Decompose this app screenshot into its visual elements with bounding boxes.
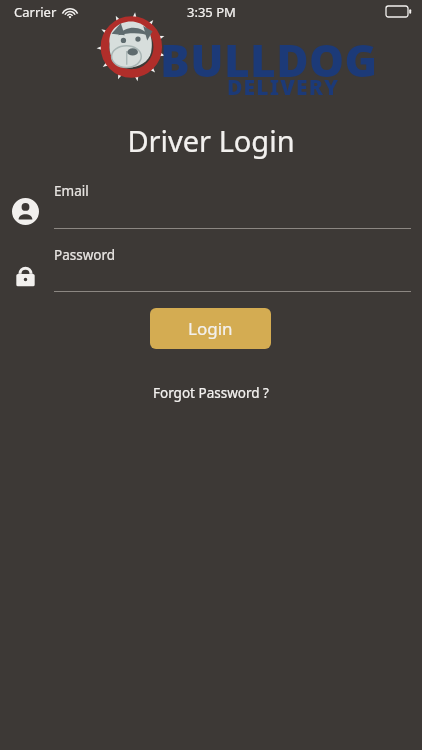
staticText: Login: [188, 317, 233, 340]
other: Email: [12, 198, 39, 225]
staticText: Password: [54, 246, 116, 264]
button[interactable]: Forgot Password ?: [145, 381, 277, 405]
staticText: Driver Login: [0, 121, 422, 160]
staticText: Carrier: [14, 3, 57, 21]
staticText: 3:35 PM: [187, 3, 236, 21]
staticText: BULLDOG: [160, 30, 378, 90]
button[interactable]: Login: [150, 308, 271, 349]
staticText: Email: [54, 182, 89, 200]
other: Password: [12, 262, 39, 289]
staticText: Forgot Password ?: [153, 384, 269, 402]
staticText: DELIVERY: [227, 73, 340, 102]
